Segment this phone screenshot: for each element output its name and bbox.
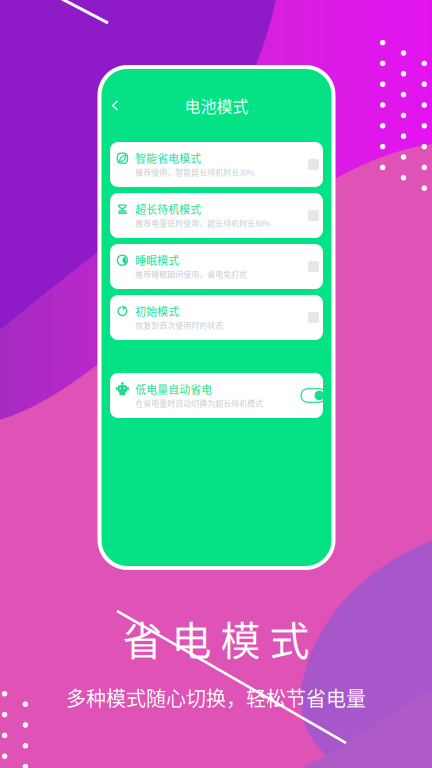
staticText: 推荐电量低时使用，超长待机时长80% (135, 217, 270, 229)
button[interactable]: 低电量自动省电 (110, 373, 323, 418)
staticText: 恢复到首次使用时的状态 (135, 319, 223, 331)
staticText: 推荐睡眠期间使用，省电免打扰 (135, 268, 247, 280)
staticText: 多种模式随心切换，轻松节省电量 (66, 683, 366, 712)
staticText: 省 电 模 式 (122, 609, 309, 667)
staticText: 初始模式 (135, 303, 179, 319)
button[interactable]: 智能省电模式 (110, 142, 323, 187)
staticText: 在省电量时自动切换为超长待机模式 (135, 397, 263, 409)
button[interactable]: 超长待机模式 (110, 193, 323, 238)
button[interactable]: 睡眠模式 (110, 244, 323, 289)
button[interactable]: 初始模式 (110, 295, 323, 340)
staticText: 低电量自动省电 (135, 381, 212, 397)
staticText: 智能省电模式 (135, 150, 201, 166)
button[interactable]: Back (103, 92, 126, 119)
staticText: 电池模式 (184, 94, 248, 117)
staticText: 睡眠模式 (135, 252, 179, 268)
staticText: 推荐使用，智能延长待机时长30% (135, 166, 254, 178)
staticText: 超长待机模式 (135, 201, 201, 217)
